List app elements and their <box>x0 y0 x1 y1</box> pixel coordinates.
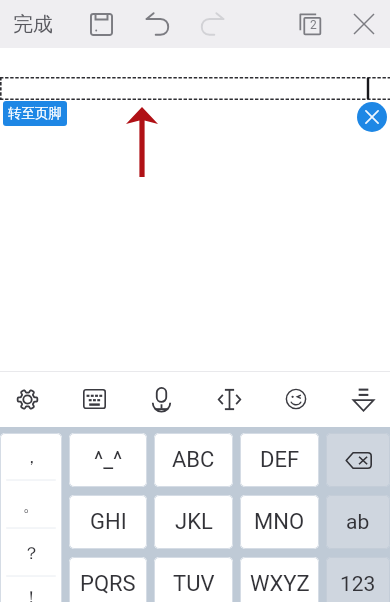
button[interactable]: Close header <box>357 102 387 132</box>
button[interactable]: ^_^ <box>69 433 147 487</box>
button[interactable]: 。 <box>0 481 62 529</box>
staticText: MNO <box>254 509 305 535</box>
button[interactable]: PQRS <box>69 557 147 602</box>
staticText: 123 <box>340 572 376 597</box>
staticText: ！ <box>23 587 40 602</box>
staticText: ， <box>23 447 40 468</box>
staticText: ABC <box>172 447 215 473</box>
staticText: ？ <box>23 543 40 564</box>
button[interactable]: Undo <box>129 0 185 48</box>
staticText: ^_^ <box>94 447 123 473</box>
staticText: ab <box>346 510 370 535</box>
button[interactable]: ？ <box>0 529 62 577</box>
staticText: 完成 <box>13 12 53 37</box>
button[interactable]: ABC <box>154 433 233 487</box>
button[interactable]: Keyboard layout <box>70 375 118 423</box>
button[interactable]: ， <box>0 433 62 481</box>
button[interactable]: 123 <box>326 557 390 602</box>
button[interactable]: Emoji <box>272 375 320 423</box>
button[interactable]: ， <box>0 433 62 602</box>
button[interactable]: JKL <box>154 495 233 549</box>
button[interactable]: Save <box>73 0 129 48</box>
button[interactable]: Move cursor <box>205 375 253 423</box>
staticText: 2 <box>310 18 317 32</box>
button[interactable]: Close <box>337 0 390 48</box>
button[interactable]: GHI <box>69 495 147 549</box>
button[interactable]: 转至页脚 <box>3 101 67 126</box>
button[interactable]: Redo <box>185 0 241 48</box>
staticText: DEF <box>260 447 300 473</box>
staticText: 。 <box>23 495 40 516</box>
button[interactable]: Voice input <box>137 375 185 423</box>
staticText: JKL <box>175 509 213 535</box>
button[interactable]: MNO <box>240 495 319 549</box>
button[interactable]: 完成 <box>0 0 73 48</box>
button[interactable]: ab <box>326 495 390 549</box>
button[interactable]: Backspace <box>326 433 390 487</box>
button[interactable]: Hide keyboard <box>339 375 387 423</box>
staticText: PQRS <box>80 571 136 597</box>
staticText: GHI <box>90 509 127 535</box>
button[interactable]: Pages <box>283 0 337 48</box>
button[interactable]: TUV <box>154 557 233 602</box>
button[interactable]: Settings <box>3 375 51 423</box>
other: Backspace <box>345 452 372 469</box>
button[interactable]: WXYZ <box>240 557 319 602</box>
staticText: TUV <box>173 571 215 597</box>
button[interactable]: ！ <box>0 577 62 602</box>
staticText: 转至页脚 <box>8 105 62 122</box>
button[interactable]: DEF <box>240 433 319 487</box>
staticText: WXYZ <box>250 571 310 597</box>
